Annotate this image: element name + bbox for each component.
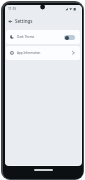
staticText: Settings [15,18,33,24]
button[interactable] [64,35,75,40]
staticText: 11:15 [8,7,17,11]
button[interactable]: App Information [6,46,80,60]
button[interactable]: Dark Theme [6,30,80,44]
button[interactable] [7,18,13,24]
staticText: App Information [17,51,41,55]
staticText: Dark Theme [17,35,35,39]
